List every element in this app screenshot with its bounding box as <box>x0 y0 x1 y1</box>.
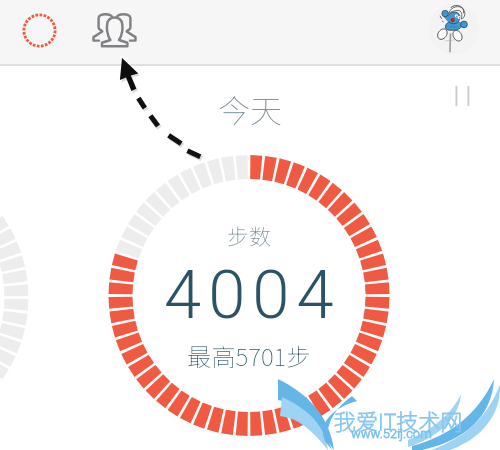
staticText: 我爱IT技术网 <box>334 404 463 436</box>
button[interactable]: Pause <box>446 78 476 108</box>
button[interactable]: Friends <box>93 13 136 47</box>
button[interactable]: 今天 <box>200 80 300 120</box>
button[interactable]: Today <box>21 12 58 49</box>
staticText: www.52ij.com <box>351 426 432 441</box>
staticText: 最高5701步 <box>187 338 311 373</box>
button[interactable]: 步数 <box>133 180 365 412</box>
staticText: 4004 <box>164 256 341 335</box>
staticText: 今天 <box>218 86 283 126</box>
button[interactable]: Profile <box>427 2 481 56</box>
staticText: 步数 <box>227 219 272 251</box>
